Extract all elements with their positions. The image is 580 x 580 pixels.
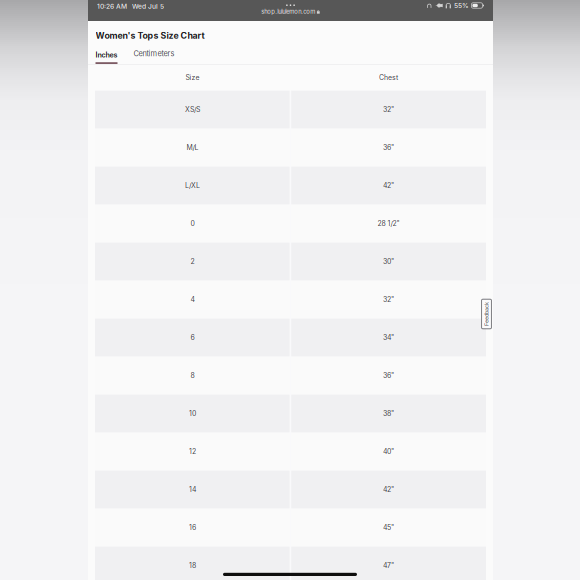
staticText: 45" — [383, 523, 394, 532]
staticText: Chest — [379, 73, 398, 82]
staticText: 16 — [189, 523, 196, 532]
staticText: Women's Tops Size Chart — [95, 30, 204, 41]
staticText: 28 1/2" — [378, 219, 400, 228]
staticText: 6 — [190, 333, 194, 342]
staticText: Inches — [95, 51, 117, 59]
staticText: L/XL — [185, 181, 200, 190]
staticText: shop.lululemon.com — [261, 8, 315, 15]
staticText: 8 — [190, 371, 194, 380]
staticText: 34" — [383, 333, 394, 342]
staticText: 36" — [383, 143, 394, 152]
staticText: 38" — [383, 409, 394, 418]
staticText: 0 — [190, 219, 194, 228]
button[interactable]: Centimeters — [133, 51, 174, 64]
staticText: 32" — [383, 295, 394, 304]
staticText: 10 — [189, 409, 196, 418]
staticText: 42" — [383, 181, 394, 190]
staticText: Size — [185, 73, 199, 82]
staticText: Centimeters — [133, 49, 174, 58]
staticText: 10:26 AM — [97, 2, 127, 10]
staticText: 36" — [383, 371, 394, 380]
button[interactable]: Inches — [95, 51, 117, 64]
staticText: 18 — [189, 561, 196, 570]
staticText: 30" — [383, 257, 394, 266]
staticText: XS/S — [185, 105, 200, 114]
button[interactable]: Feedback — [470, 298, 502, 330]
staticText: 32" — [383, 105, 394, 114]
staticText: 40" — [383, 447, 394, 456]
staticText: 2 — [190, 257, 194, 266]
staticText: 12 — [189, 447, 196, 456]
staticText: 14 — [189, 485, 196, 494]
staticText: Wed Jul 5 — [132, 2, 164, 10]
staticText: M/L — [186, 143, 198, 152]
staticText: 55% — [454, 1, 469, 10]
staticText: Feedback — [474, 311, 498, 317]
staticText: 47" — [383, 561, 394, 570]
staticText: 4 — [190, 295, 194, 304]
staticText: 42" — [383, 485, 394, 494]
